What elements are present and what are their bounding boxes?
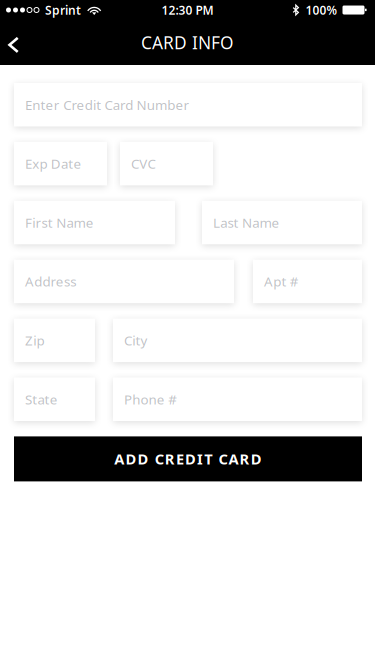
button[interactable]: First Name (14, 201, 175, 244)
staticText: 100% (305, 2, 337, 18)
staticText: CVC (131, 155, 155, 172)
button[interactable]: Back (0, 20, 36, 64)
button[interactable]: CVC (120, 142, 213, 185)
button[interactable]: State (14, 377, 95, 421)
button[interactable]: Address (14, 260, 234, 303)
button[interactable]: Apt # (253, 260, 362, 303)
staticText: Exp Date (25, 155, 81, 172)
button[interactable]: Enter Credit Card Number (14, 83, 362, 126)
staticText: Phone # (124, 390, 177, 408)
button[interactable]: Phone # (113, 377, 362, 421)
staticText: Apt # (264, 273, 299, 290)
staticText: Last Name (213, 214, 280, 231)
button[interactable]: Last Name (202, 201, 362, 244)
staticText: City (124, 331, 148, 349)
staticText: State (25, 390, 58, 408)
staticText: 12:30 PM (161, 2, 213, 18)
staticText: Sprint (45, 2, 81, 18)
button[interactable]: Zip (14, 319, 95, 362)
staticText: CARD INFO (141, 31, 234, 54)
staticText: Enter Credit Card Number (25, 96, 190, 114)
button[interactable]: City (113, 319, 362, 362)
button[interactable]: ADD CREDIT CARD (14, 436, 362, 481)
staticText: ADD CREDIT CARD (114, 449, 262, 469)
staticText: First Name (25, 214, 94, 231)
staticText: Zip (25, 331, 44, 349)
staticText: Address (25, 273, 76, 290)
button[interactable]: Exp Date (14, 142, 107, 185)
